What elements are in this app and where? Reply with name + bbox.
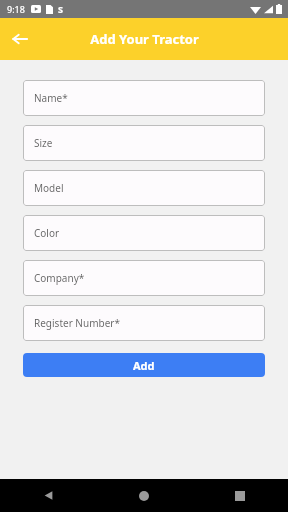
button[interactable]: Company* xyxy=(23,260,265,296)
button[interactable]: Home xyxy=(96,479,192,512)
staticText: Register Number* xyxy=(34,316,120,330)
button[interactable]: Back xyxy=(0,479,96,512)
button[interactable]: Register Number* xyxy=(23,305,265,341)
staticText: Company* xyxy=(34,271,85,285)
staticText: S xyxy=(58,3,63,15)
staticText: Add Your Tractor xyxy=(90,30,199,48)
staticText: Size xyxy=(34,136,53,150)
staticText: Model xyxy=(34,181,64,195)
staticText: Color xyxy=(34,226,60,240)
staticText: Add xyxy=(133,358,155,373)
button[interactable]: Size xyxy=(23,125,265,161)
staticText: 9:18 xyxy=(7,3,25,15)
button[interactable]: Name* xyxy=(23,80,265,116)
button[interactable]: Model xyxy=(23,170,265,206)
staticText: Name* xyxy=(34,91,68,105)
button[interactable]: Add xyxy=(23,353,265,377)
button[interactable]: Color xyxy=(23,215,265,251)
button[interactable]: Back xyxy=(7,26,33,52)
button[interactable]: Recent apps xyxy=(192,479,288,512)
